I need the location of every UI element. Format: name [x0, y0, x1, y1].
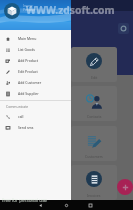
- staticText: Invoices: [87, 193, 101, 198]
- button[interactable]: Main Menu: [0, 33, 71, 44]
- button[interactable]: Add Product: [0, 55, 71, 66]
- button[interactable]: Contacts: [71, 86, 117, 121]
- button[interactable]: Settings: [118, 23, 129, 34]
- button[interactable]: Home: [62, 201, 71, 210]
- staticText: Edit: [91, 75, 98, 80]
- staticText: Contacts: [87, 114, 102, 119]
- staticText: call: [18, 114, 24, 119]
- staticText: Add Product: [18, 58, 39, 63]
- button[interactable]: call: [0, 111, 71, 122]
- button[interactable]: Products: [16, 126, 62, 161]
- staticText: Communicate: [6, 104, 29, 109]
- staticText: WWW.zdsoft.com: [26, 3, 115, 17]
- button[interactable]: Invoices: [71, 165, 117, 200]
- button[interactable]: Add: [117, 179, 133, 195]
- button[interactable]: Edit Product: [0, 66, 71, 77]
- button[interactable]: Edit: [71, 47, 117, 82]
- button[interactable]: Customers: [71, 126, 117, 161]
- staticText: Add Supplier: [18, 91, 39, 96]
- staticText: List Goods: [18, 47, 35, 52]
- staticText: Main Menu: [18, 36, 37, 41]
- button[interactable]: Send sms: [0, 122, 71, 133]
- staticText: Edit Product: [18, 69, 38, 74]
- staticText: Image Preview: [23, 4, 35, 12]
- button[interactable]: List Goods: [0, 44, 71, 55]
- staticText: free for personal use: [2, 197, 47, 203]
- button[interactable]: Recents: [86, 201, 95, 210]
- staticText: Customers: [85, 154, 103, 159]
- button[interactable]: Add: [16, 47, 62, 82]
- staticText: Send sms: [18, 125, 34, 130]
- button[interactable]: Add Customer: [0, 77, 71, 88]
- button[interactable]: Add Supplier: [0, 88, 71, 99]
- button[interactable]: Suppliers: [16, 86, 62, 121]
- staticText: Add Customer: [18, 80, 42, 85]
- button[interactable]: Back: [36, 201, 45, 210]
